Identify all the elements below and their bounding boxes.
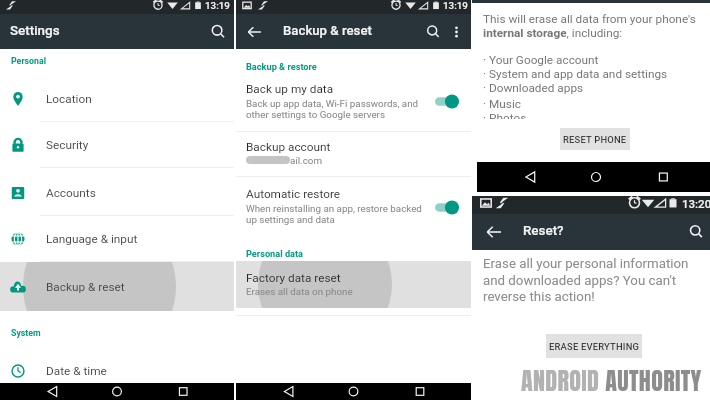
button[interactable]: Backup account bbox=[236, 132, 471, 177]
staticText: · System and app data and settings bbox=[483, 67, 668, 81]
staticText: Automatic restore bbox=[246, 187, 341, 201]
staticText: Erases all data on phone bbox=[246, 286, 353, 297]
staticText: 13:20 bbox=[682, 197, 710, 210]
staticText: Language & input bbox=[46, 232, 138, 246]
staticText: Security bbox=[46, 138, 89, 152]
staticText: Back up app data, Wi-Fi passwords, and o… bbox=[246, 98, 419, 120]
button[interactable]: Toggle bbox=[435, 200, 459, 215]
staticText: Erase all your personal information and … bbox=[483, 256, 689, 304]
button[interactable]: Security bbox=[0, 121, 234, 168]
staticText: System bbox=[11, 328, 41, 338]
button[interactable]: Backup & reset bbox=[0, 262, 234, 311]
button[interactable]: Back bbox=[476, 214, 512, 250]
staticText: Accounts bbox=[46, 186, 96, 200]
staticText: ERASE EVERYTHING bbox=[549, 341, 640, 352]
button[interactable]: Back bbox=[236, 15, 270, 49]
staticText: Backup & restore bbox=[246, 61, 317, 72]
button[interactable]: Search bbox=[676, 215, 710, 249]
staticText: ail.com bbox=[290, 155, 322, 166]
staticText: Location bbox=[46, 92, 92, 106]
staticText: · Photos bbox=[483, 111, 527, 119]
staticText: This will erase all data from your phone… bbox=[483, 12, 696, 40]
button[interactable]: Search bbox=[200, 15, 234, 49]
button[interactable]: ERASE EVERYTHING bbox=[546, 334, 642, 358]
button[interactable]: Search bbox=[419, 18, 447, 46]
staticText: Date & time bbox=[46, 364, 107, 378]
staticText: Backup & reset bbox=[283, 23, 372, 38]
button[interactable]: Language & input bbox=[0, 215, 234, 262]
button[interactable]: Toggle bbox=[435, 94, 459, 109]
staticText: Backup & reset bbox=[46, 280, 125, 294]
staticText: · Music bbox=[483, 97, 521, 111]
staticText: 13:19 bbox=[443, 0, 468, 11]
staticText: Back up my data bbox=[246, 82, 334, 96]
staticText: · Your Google account bbox=[483, 53, 599, 67]
staticText: Settings bbox=[10, 23, 60, 39]
button[interactable]: Location bbox=[0, 75, 234, 122]
button[interactable]: More options bbox=[443, 19, 469, 45]
staticText: Reset? bbox=[523, 223, 564, 239]
staticText: 13:19 bbox=[205, 0, 230, 11]
button[interactable]: Date & time bbox=[0, 347, 234, 394]
button[interactable]: RESET PHONE bbox=[560, 128, 630, 150]
staticText: Backup account bbox=[246, 140, 331, 154]
button[interactable]: Factory data reset bbox=[236, 261, 471, 308]
staticText: Factory data reset bbox=[246, 271, 341, 285]
button[interactable]: Automatic restore bbox=[236, 181, 471, 237]
staticText: RESET PHONE bbox=[563, 134, 627, 145]
button[interactable]: Accounts bbox=[0, 169, 234, 216]
staticText: Personal data bbox=[246, 248, 304, 259]
staticText: · Downloaded apps bbox=[483, 81, 584, 95]
staticText: ANDROID AUTHORITY bbox=[521, 363, 702, 399]
staticText: When reinstalling an app, restore backed… bbox=[246, 203, 422, 225]
button[interactable]: Back up my data bbox=[236, 76, 471, 132]
staticText: Personal bbox=[11, 56, 47, 66]
